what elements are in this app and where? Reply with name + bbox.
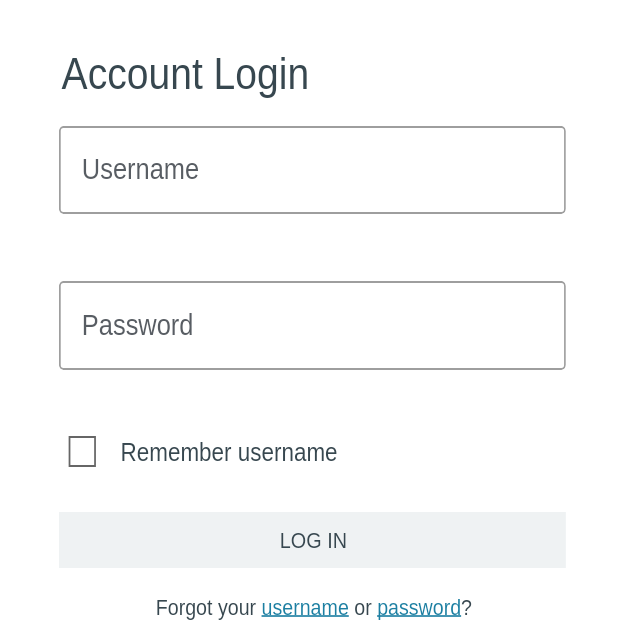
staticText: Username	[82, 153, 200, 185]
button[interactable]: Username	[59, 126, 566, 214]
staticText: Account Login	[62, 49, 310, 99]
button[interactable]: Remember username	[69, 436, 96, 467]
button[interactable]: Forgot your username or password?	[156, 0, 473, 620]
staticText: Password	[82, 309, 194, 341]
button[interactable]: Password	[59, 281, 566, 370]
button[interactable]: LOG IN	[59, 512, 566, 568]
button[interactable]: Remember username	[121, 0, 338, 466]
staticText: LOG IN	[280, 528, 348, 553]
